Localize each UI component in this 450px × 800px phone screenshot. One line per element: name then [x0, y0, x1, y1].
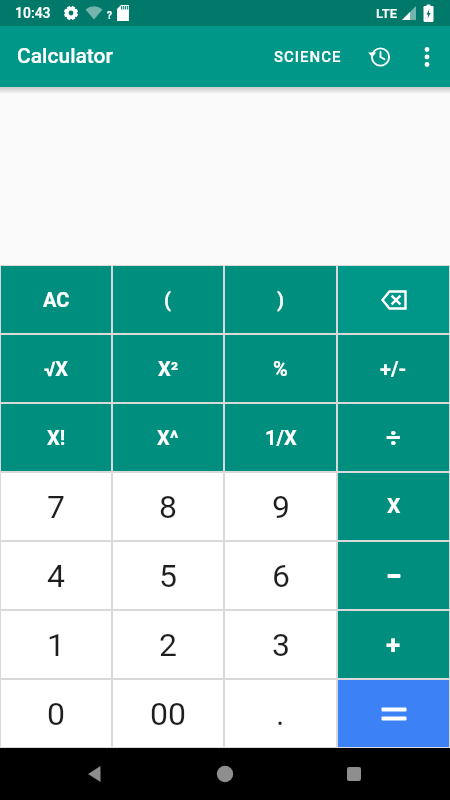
staticText: .	[276, 695, 285, 733]
button[interactable]: 2	[113, 611, 223, 678]
staticText: √X	[44, 357, 69, 380]
staticText: ?	[107, 10, 112, 22]
staticText: 9	[272, 488, 290, 526]
staticText: )	[277, 288, 285, 311]
button[interactable]: %	[225, 335, 336, 402]
button[interactable]: √X	[1, 335, 111, 402]
button[interactable]: X!	[1, 404, 111, 471]
staticText: +/-	[380, 357, 407, 380]
button[interactable]	[368, 45, 392, 69]
button[interactable]: 00	[113, 680, 223, 747]
button[interactable]: 8	[113, 473, 223, 540]
staticText: 10:43	[15, 5, 51, 21]
staticText: Calculator	[17, 44, 113, 69]
button[interactable]	[422, 45, 432, 69]
staticText: 4	[47, 557, 65, 595]
staticText: 00	[150, 695, 186, 733]
staticText: 1	[47, 626, 65, 664]
staticText: +	[386, 630, 401, 660]
button[interactable]: X	[338, 473, 449, 540]
staticText: X	[387, 494, 401, 519]
button[interactable]: .	[225, 680, 336, 747]
button[interactable]: 9	[225, 473, 336, 540]
staticText: %	[273, 357, 288, 380]
button[interactable]: 1/X	[225, 404, 336, 471]
staticText: 1/X	[265, 426, 297, 449]
button[interactable]: (	[113, 266, 223, 333]
staticText: 5	[159, 557, 177, 595]
staticText: (	[164, 288, 172, 311]
staticText: 0	[47, 695, 65, 733]
button[interactable]: +	[338, 611, 449, 678]
button[interactable]: 4	[1, 542, 111, 609]
button[interactable]: SCIENCE	[270, 44, 346, 70]
button[interactable]	[86, 765, 104, 783]
button[interactable]: 1	[1, 611, 111, 678]
button[interactable]	[345, 765, 363, 783]
button[interactable]	[216, 765, 234, 783]
button[interactable]: AC	[1, 266, 111, 333]
staticText: X^	[157, 426, 179, 449]
staticText: 6	[272, 557, 290, 595]
staticText: 3	[272, 626, 290, 664]
staticText: 8	[159, 488, 177, 526]
staticText: AC	[43, 288, 70, 311]
staticText: ÷	[386, 423, 401, 453]
staticText: X²	[158, 357, 179, 380]
button[interactable]: 3	[225, 611, 336, 678]
staticText: 2	[159, 626, 177, 664]
button[interactable]	[338, 266, 449, 333]
button[interactable]	[338, 680, 449, 747]
button[interactable]: X²	[113, 335, 223, 402]
button[interactable]: ÷	[338, 404, 449, 471]
staticText: X!	[47, 426, 66, 449]
button[interactable]	[338, 542, 449, 609]
button[interactable]: 5	[113, 542, 223, 609]
staticText: SCIENCE	[274, 48, 342, 66]
button[interactable]: 7	[1, 473, 111, 540]
staticText: 7	[47, 488, 65, 526]
button[interactable]: +/-	[338, 335, 449, 402]
button[interactable]: 6	[225, 542, 336, 609]
button[interactable]: 0	[1, 680, 111, 747]
button[interactable]: )	[225, 266, 336, 333]
staticText: LTE	[376, 6, 397, 21]
button[interactable]: X^	[113, 404, 223, 471]
